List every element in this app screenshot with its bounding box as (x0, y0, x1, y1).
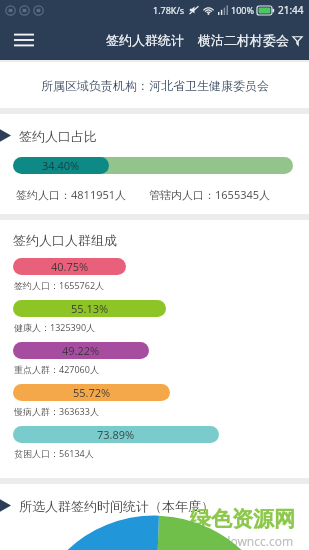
staticText: 所属区域负责机构：河北省卫生健康委员会 (41, 78, 269, 93)
button[interactable]: 签约人群统计 (106, 32, 184, 48)
staticText: 贫困人口：56134人 (14, 447, 94, 459)
staticText: 横沽二村村委会 (198, 32, 289, 48)
staticText: 1.78K/s (153, 4, 185, 16)
staticText: 管辖内人口：1655345人 (149, 187, 271, 202)
staticText: 签约人口人群组成 (13, 232, 117, 248)
staticText: 签约人口：1655762人 (14, 279, 105, 291)
staticText: 绿色资源网 (190, 506, 295, 532)
staticText: 重点人群：427060人 (14, 363, 99, 375)
staticText: 签约人口：4811951人 (16, 187, 127, 202)
staticText: 签约人口占比 (19, 128, 97, 144)
button[interactable]: 签约人口占比 (0, 114, 309, 214)
staticText: 签约人群统计 (106, 32, 184, 48)
staticText: 所选人群签约时间统计（本年度） (19, 498, 214, 514)
staticText: 55.13% (71, 301, 109, 316)
staticText: 73.89% (97, 427, 135, 442)
staticText: 健康人：1325390人 (14, 321, 96, 333)
staticText: www.downcc.com (192, 533, 294, 549)
staticText: 55.72% (73, 385, 111, 400)
staticText: 34.40% (42, 158, 80, 173)
button[interactable]: 所属区域负责机构：河北省卫生健康委员会 (0, 62, 309, 108)
button[interactable]: Menu (8, 24, 40, 56)
staticText: 40.75% (51, 259, 89, 274)
staticText: 慢病人群：363633人 (14, 405, 99, 417)
button[interactable]: 所选人群签约时间统计（本年度） (0, 484, 309, 550)
staticText: 49.22% (62, 343, 100, 358)
button[interactable]: 签约人口人群组成 (0, 220, 309, 478)
button[interactable]: 横沽二村村委会 (198, 32, 303, 48)
staticText: 21:44 (278, 3, 304, 17)
staticText: 100% (231, 4, 254, 16)
